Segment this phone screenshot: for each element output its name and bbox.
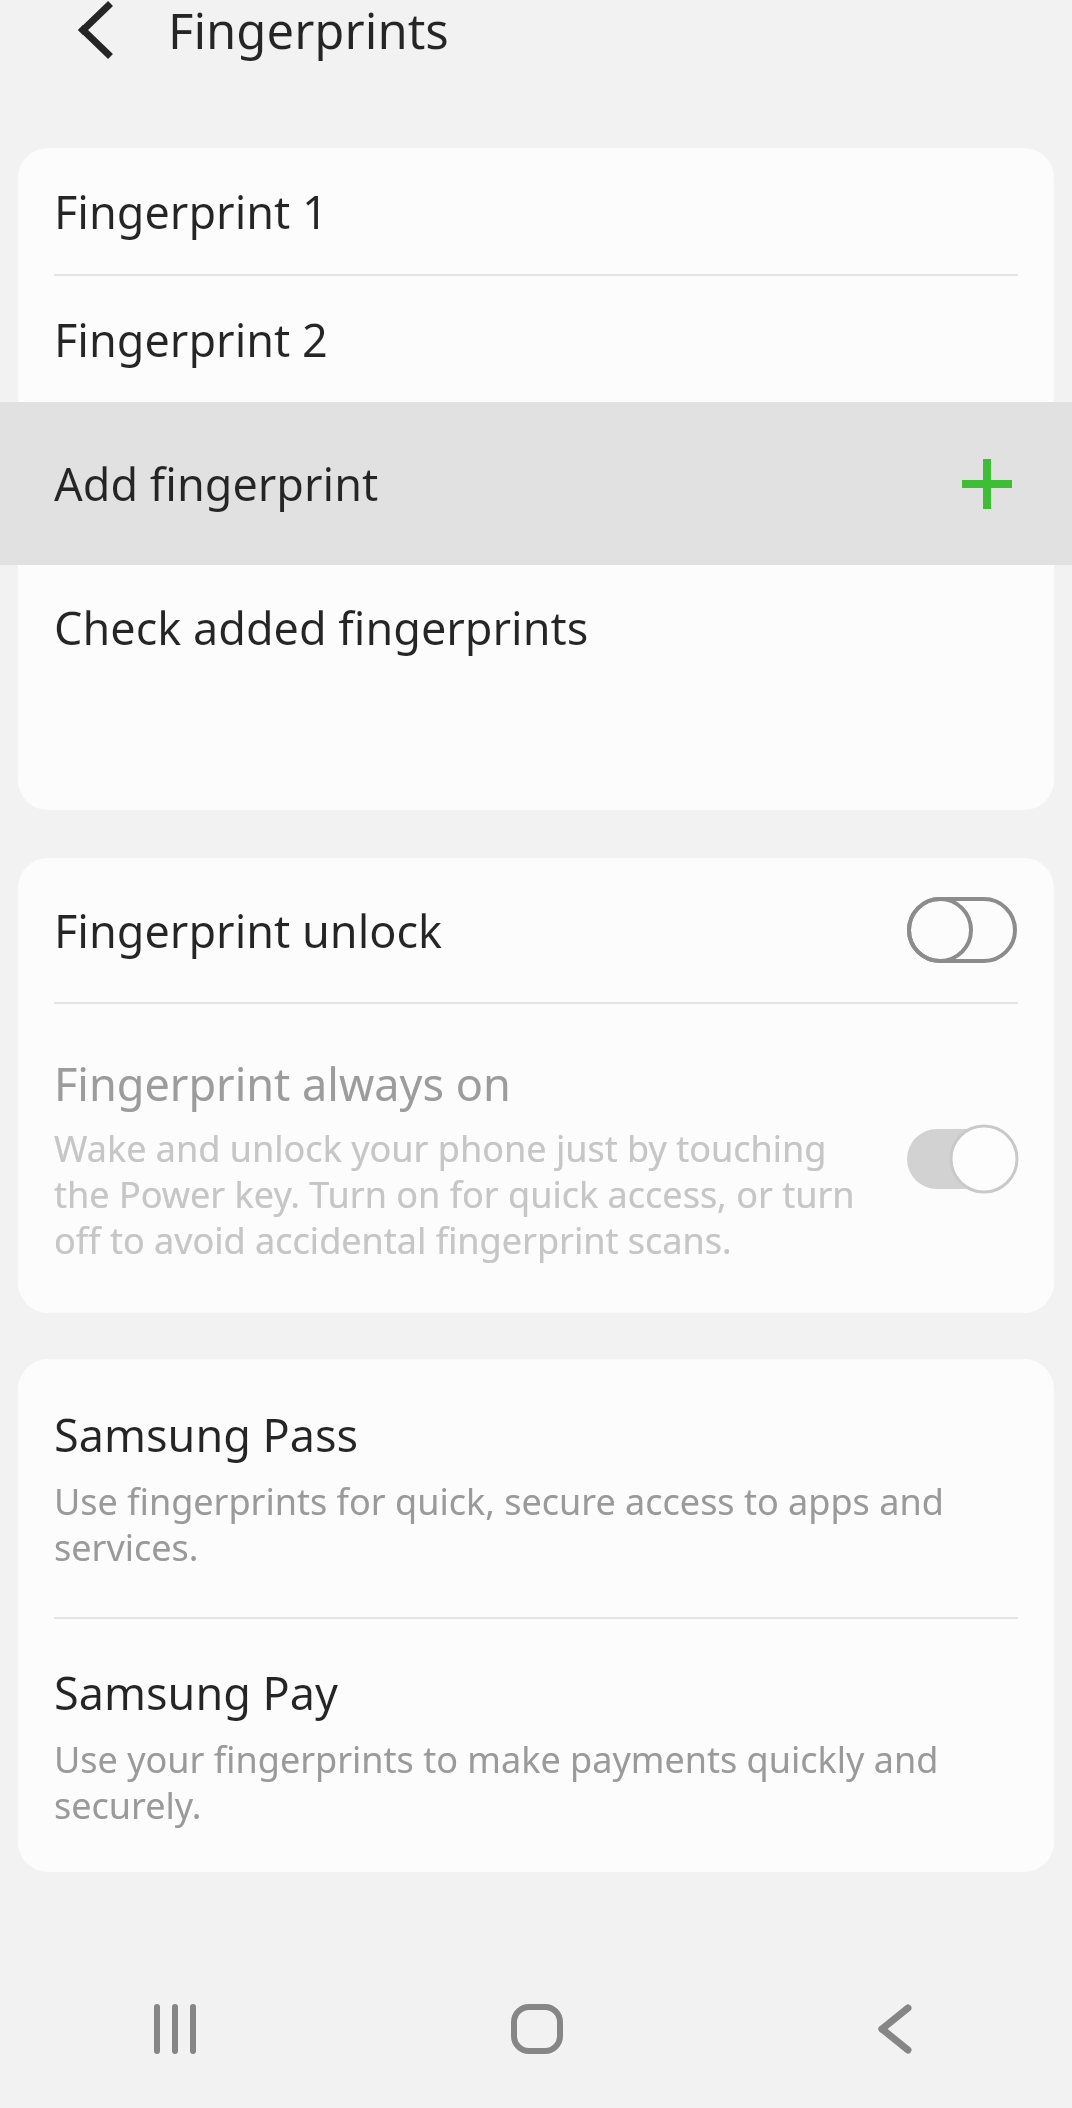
button[interactable]: Samsung Pass [18,1359,1054,1617]
staticText: Check added fingerprints [54,597,589,658]
button[interactable]: Navigate up [34,0,132,74]
button[interactable]: Fingerprint 1 [18,148,1054,274]
staticText: Fingerprint unlock [54,900,906,961]
button[interactable]: Fingerprint unlock toggle, off [906,895,1018,965]
staticText: Fingerprint always on [54,1053,511,1114]
staticText: Add fingerprint [54,453,956,514]
staticText: Use your fingerprints to make payments q… [54,1735,1008,1830]
button[interactable]: Recent apps [0,1950,358,2108]
button[interactable]: Fingerprint unlock [18,858,1054,1002]
button[interactable]: Fingerprint always on [18,1004,1054,1313]
staticText: Samsung Pass [54,1404,359,1465]
button[interactable]: Back [715,1950,1072,2108]
staticText: Fingerprints [168,0,449,64]
button[interactable]: Add fingerprint [0,402,1072,565]
staticText: Wake and unlock your phone just by touch… [54,1124,882,1265]
button[interactable]: Home [358,1950,715,2108]
staticText: Fingerprint 2 [54,309,328,370]
button[interactable]: Fingerprint 2 [18,276,1054,402]
staticText: Use fingerprints for quick, secure acces… [54,1477,1008,1572]
staticText: Fingerprint 1 [54,181,328,242]
button[interactable]: Fingerprint always on toggle, on [906,1124,1018,1194]
button[interactable]: Check added fingerprints [18,565,1054,690]
button[interactable]: Samsung Pay [18,1619,1054,1872]
staticText: Samsung Pay [54,1662,338,1723]
